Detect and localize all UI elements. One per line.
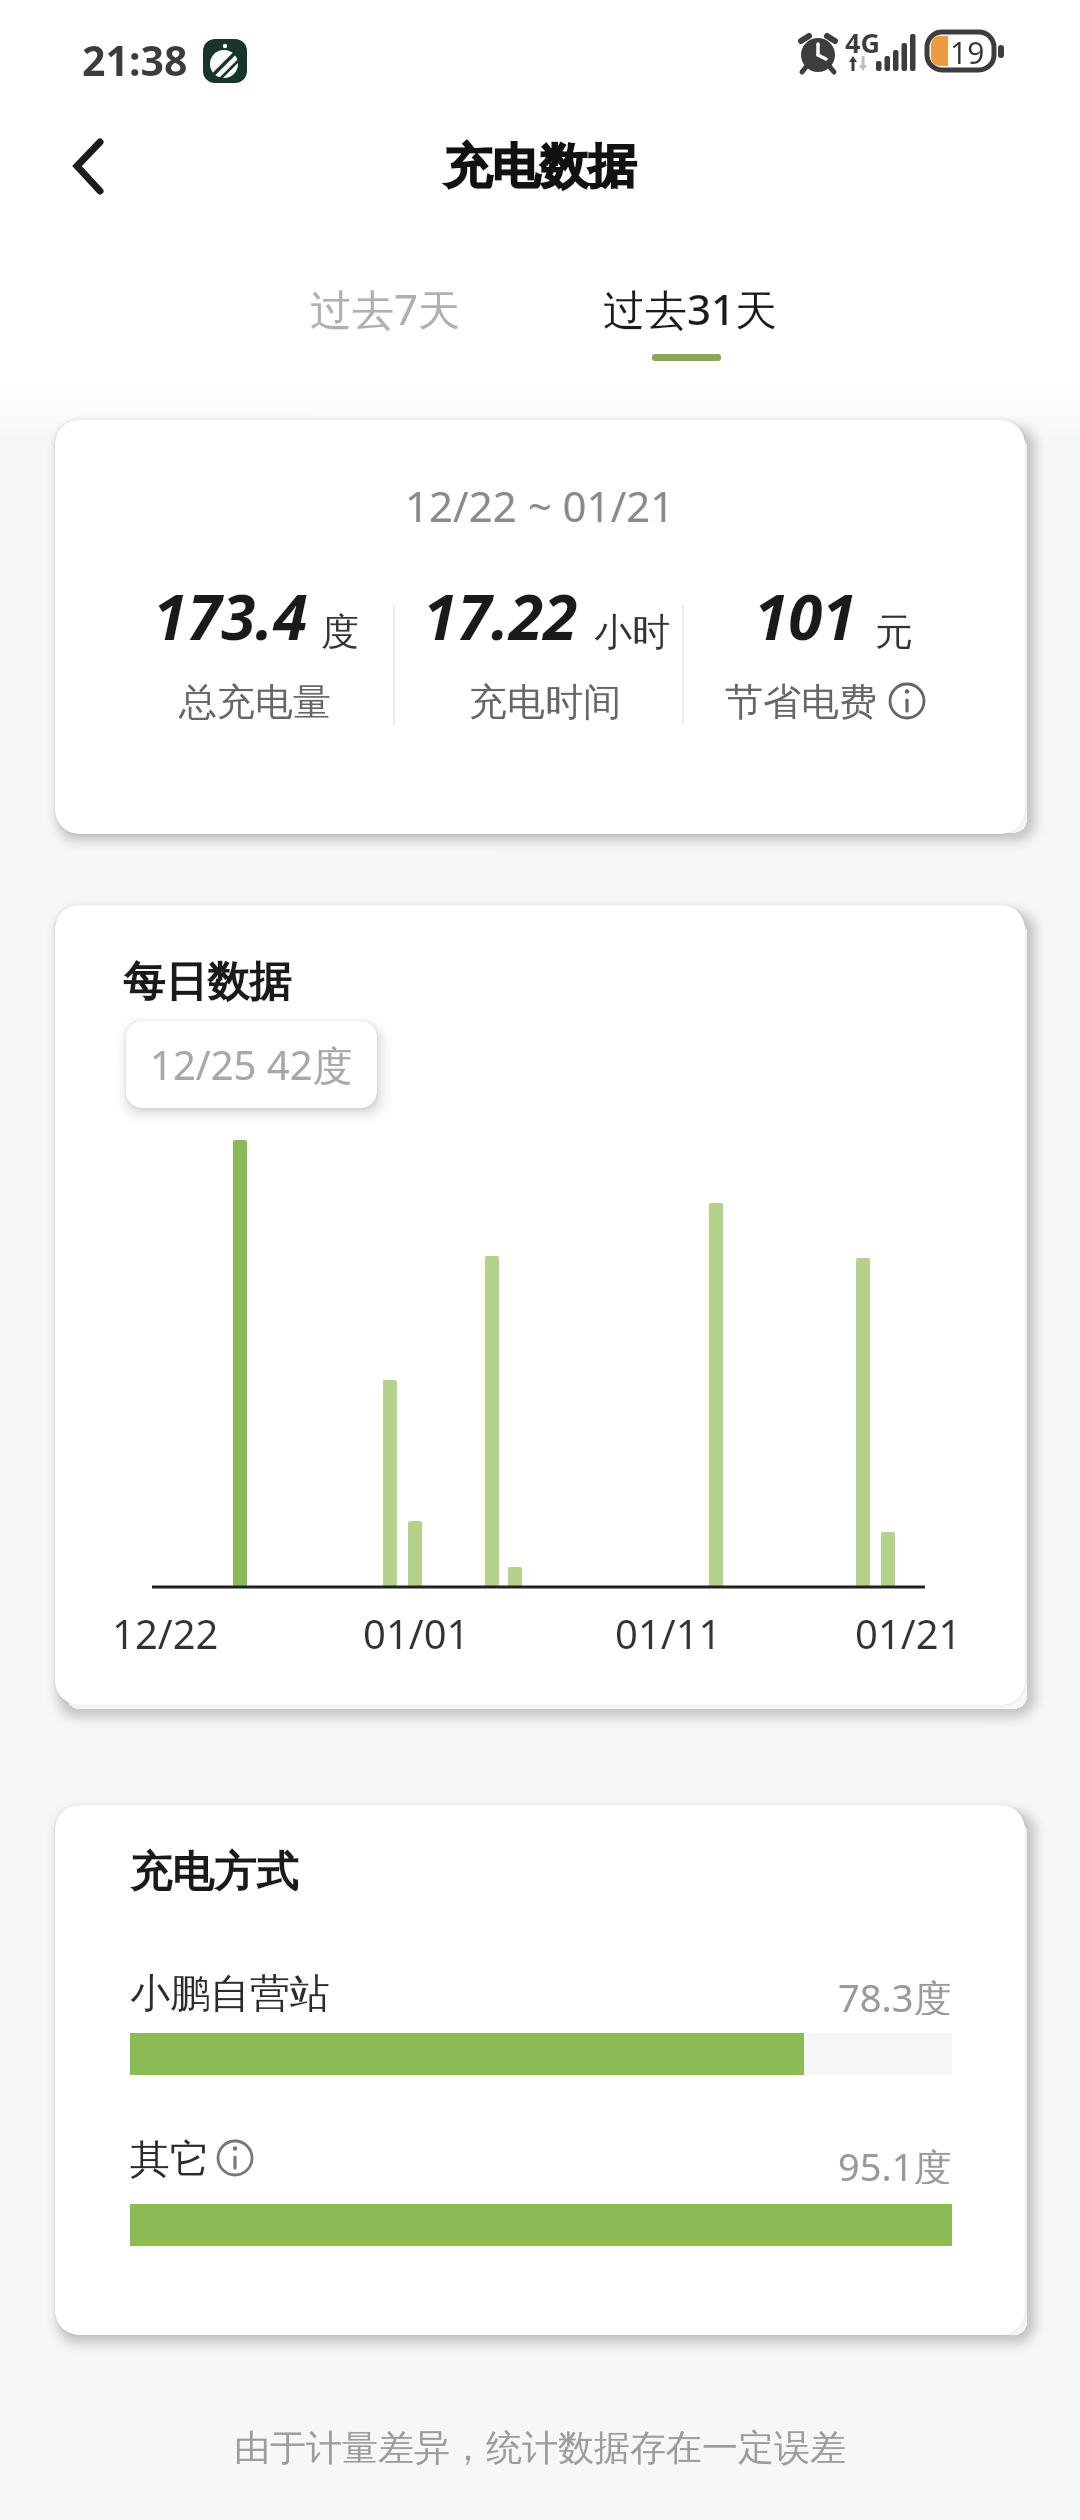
staticText: 19 — [950, 32, 985, 73]
staticText: 95.1度 — [838, 2140, 952, 2184]
staticText: 过去31天 — [603, 280, 778, 337]
button[interactable] — [216, 2139, 254, 2177]
staticText: 01/21 — [855, 1606, 962, 1654]
staticText: 173.4 — [153, 574, 308, 646]
staticText: 充电数据 — [444, 137, 636, 197]
staticText: 度 — [321, 608, 359, 652]
staticText: 节省电费 — [725, 678, 877, 724]
staticText: 小时 — [594, 608, 670, 652]
staticText: 小鹏自营站 — [130, 1968, 330, 2016]
button[interactable] — [55, 130, 125, 200]
staticText: 充电方式 — [130, 1846, 298, 1899]
button[interactable]: 过去7天 — [280, 275, 490, 341]
staticText: 由于计量差异，统计数据存在一定误差 — [234, 2425, 846, 2470]
staticText: 12/22 — [112, 1606, 219, 1654]
staticText: 总充电量 — [179, 678, 331, 724]
staticText: 01/01 — [363, 1606, 470, 1654]
staticText: 101 — [754, 574, 857, 646]
staticText: 12/22 ~ 01/21 — [405, 477, 675, 523]
staticText: 充电时间 — [469, 678, 621, 724]
staticText: 其它 — [130, 2134, 210, 2182]
staticText: 78.3度 — [838, 1971, 952, 2015]
button[interactable]: 过去31天 — [585, 275, 795, 341]
staticText: 12/25 42度 — [150, 1037, 353, 1092]
staticText: 过去7天 — [310, 280, 461, 337]
staticText: 4G — [845, 24, 879, 58]
staticText: 01/11 — [615, 1606, 722, 1654]
staticText: 21:38 — [82, 32, 188, 88]
button[interactable] — [888, 682, 926, 720]
staticText: 每日数据 — [123, 956, 291, 1009]
staticText: 17.22 — [423, 574, 578, 646]
staticText: 元 — [875, 608, 913, 652]
